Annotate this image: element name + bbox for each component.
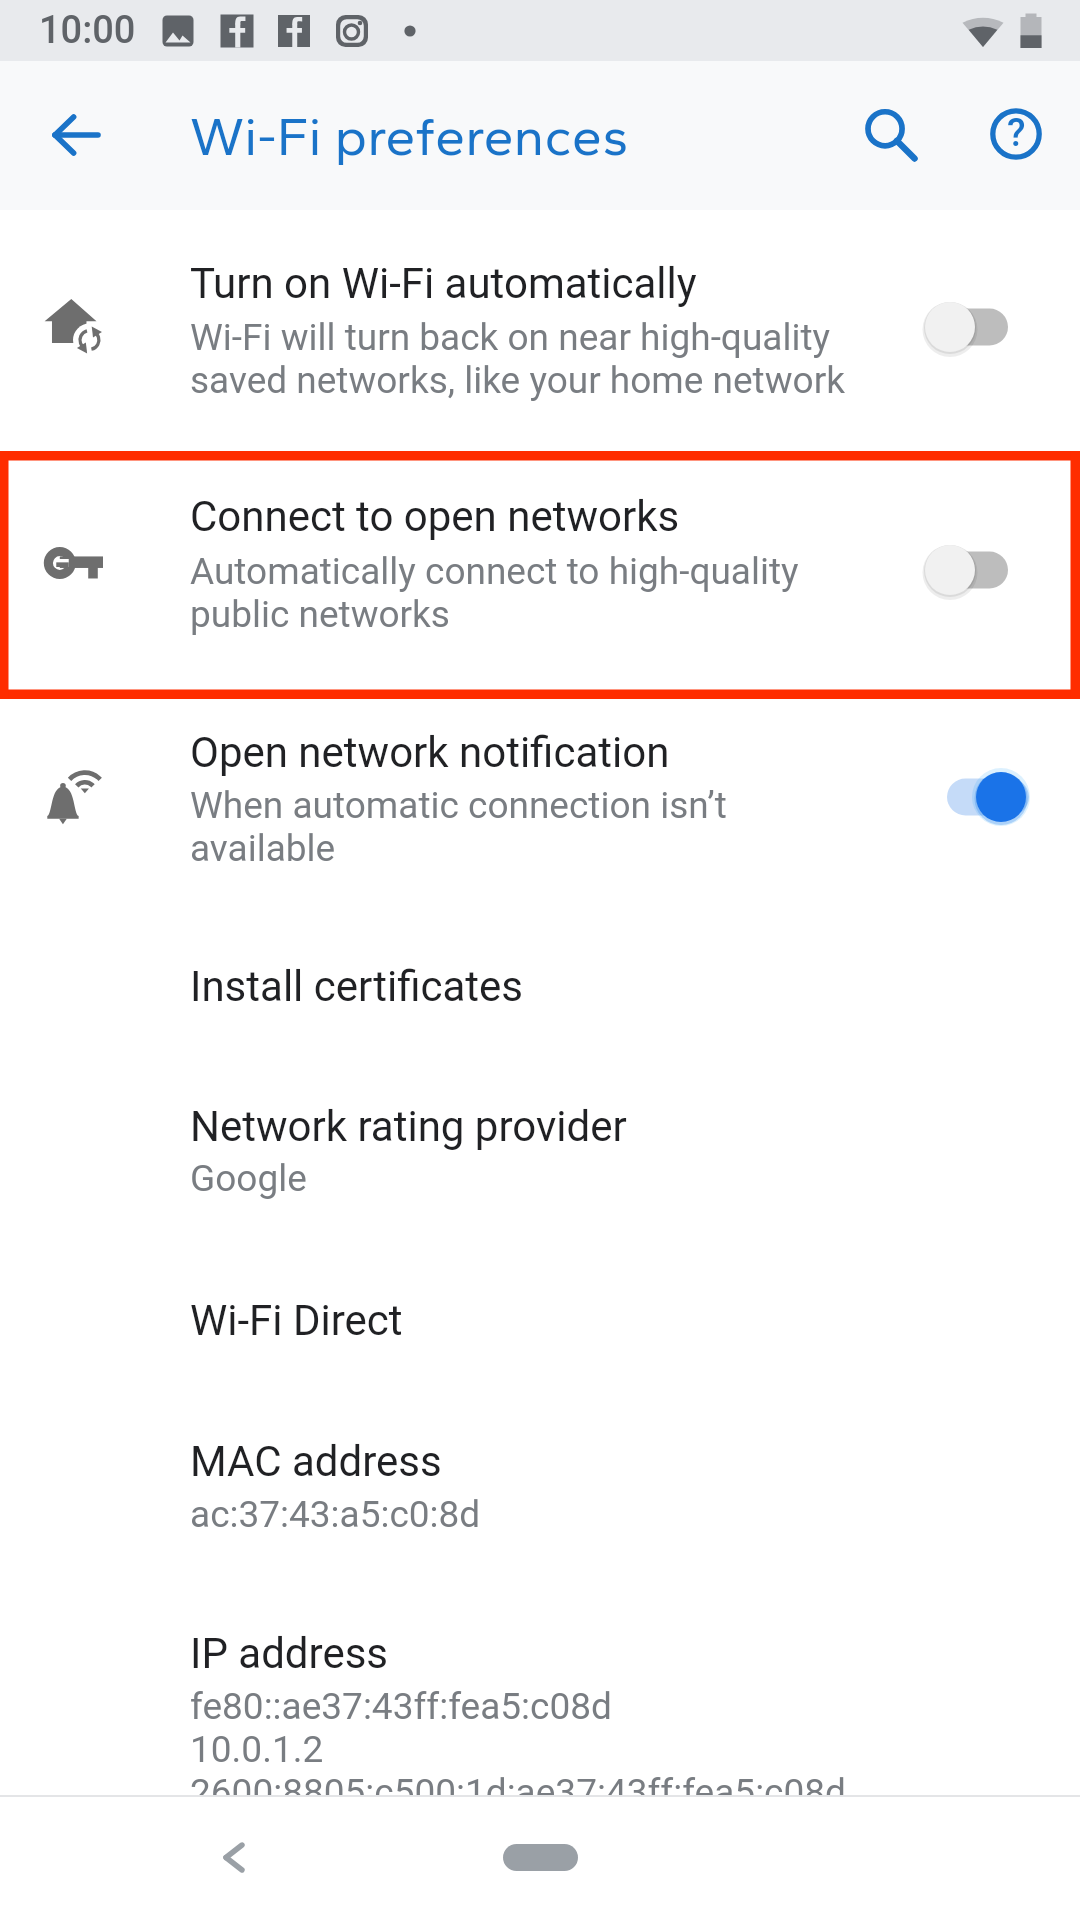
button[interactable]: Wi-Fi Direct xyxy=(0,1260,1080,1400)
button[interactable]: Network rating provider xyxy=(0,1070,1080,1260)
staticText: 10:00 xyxy=(39,8,136,53)
button[interactable]: Off xyxy=(900,282,1036,372)
staticText: When automatic connection isn’t availabl… xyxy=(190,784,727,870)
staticText: Automatically connect to high-quality pu… xyxy=(190,550,799,636)
staticText: MAC address xyxy=(190,1437,442,1486)
staticText: Wi-Fi preferences xyxy=(190,104,629,169)
staticText: Connect to open networks xyxy=(190,492,680,541)
button[interactable]: IP address xyxy=(0,1600,1080,1795)
button[interactable]: Back xyxy=(184,1807,284,1907)
button[interactable]: MAC address xyxy=(0,1400,1080,1600)
staticText: Turn on Wi-Fi automatically xyxy=(190,259,697,308)
staticText: Google xyxy=(190,1157,307,1200)
button[interactable]: Home xyxy=(503,1844,578,1871)
button[interactable]: Connect to open networks xyxy=(0,450,1080,698)
staticText: Open network notification xyxy=(190,728,670,777)
staticText: Wi-Fi will turn back on near high-qualit… xyxy=(190,316,845,402)
staticText: ? xyxy=(1007,111,1026,156)
button[interactable]: Open network notification xyxy=(0,698,1080,930)
button[interactable]: On xyxy=(921,752,1057,842)
staticText: IP address xyxy=(190,1629,389,1678)
button[interactable]: Help xyxy=(966,84,1066,184)
staticText: Wi-Fi Direct xyxy=(190,1296,403,1345)
staticText: fe80::ae37:43ff:fea5:c08d 10.0.1.2 2600:… xyxy=(190,1685,846,1814)
staticText: Network rating provider xyxy=(190,1102,627,1151)
staticText: Install certificates xyxy=(190,962,523,1011)
button[interactable]: Install certificates xyxy=(0,930,1080,1070)
staticText: ac:37:43:a5:c0:8d xyxy=(190,1493,481,1536)
button[interactable]: Navigate up xyxy=(25,85,125,185)
button[interactable]: Off xyxy=(900,525,1036,615)
button[interactable]: Search xyxy=(842,86,942,186)
button[interactable]: Turn on Wi-Fi automatically xyxy=(0,210,1080,450)
